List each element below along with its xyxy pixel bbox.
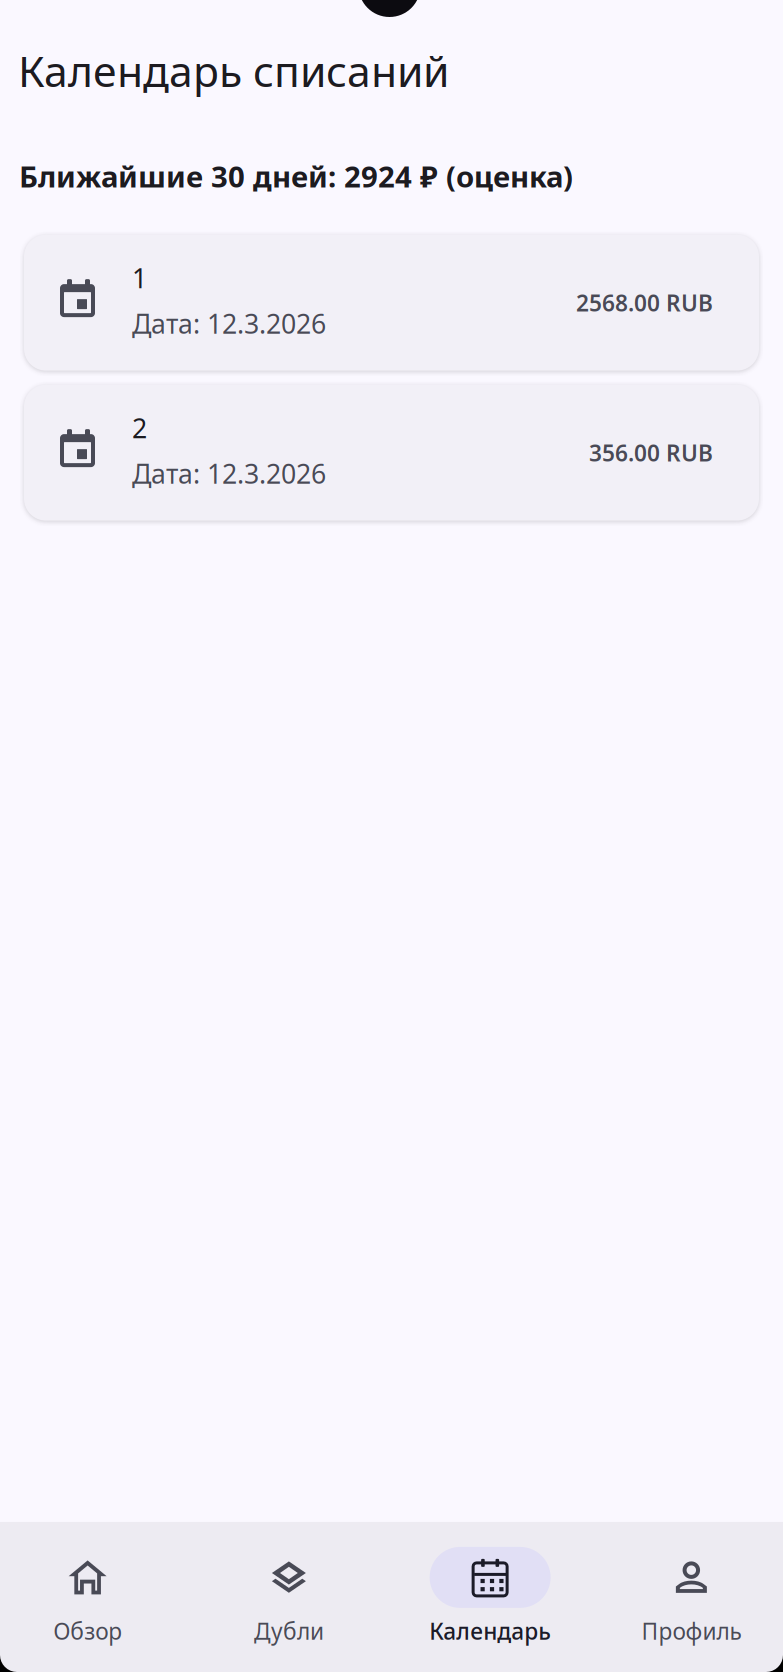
staticText: 2 <box>132 410 147 446</box>
button[interactable]: 1 <box>24 235 759 371</box>
staticText: Дата: 12.3.2026 <box>132 306 326 341</box>
staticText: 356.00 RUB <box>589 438 713 468</box>
button[interactable]: Профиль <box>591 1547 783 1646</box>
button[interactable]: Дубли <box>188 1547 389 1646</box>
button[interactable]: Календарь <box>389 1547 591 1646</box>
staticText: Дубли <box>254 1616 324 1646</box>
staticText: Ближайшие 30 дней: 2924 ₽ (оценка) <box>19 157 573 196</box>
staticText: 2568.00 RUB <box>576 288 713 318</box>
staticText: Календарь списаний <box>18 42 449 99</box>
button[interactable]: 2 <box>24 385 759 521</box>
button[interactable]: Обзор <box>0 1547 188 1646</box>
staticText: Календарь <box>429 1616 551 1646</box>
staticText: Профиль <box>641 1616 741 1646</box>
staticText: 1 <box>132 260 147 296</box>
staticText: Дата: 12.3.2026 <box>132 456 326 491</box>
staticText: Обзор <box>53 1616 122 1646</box>
